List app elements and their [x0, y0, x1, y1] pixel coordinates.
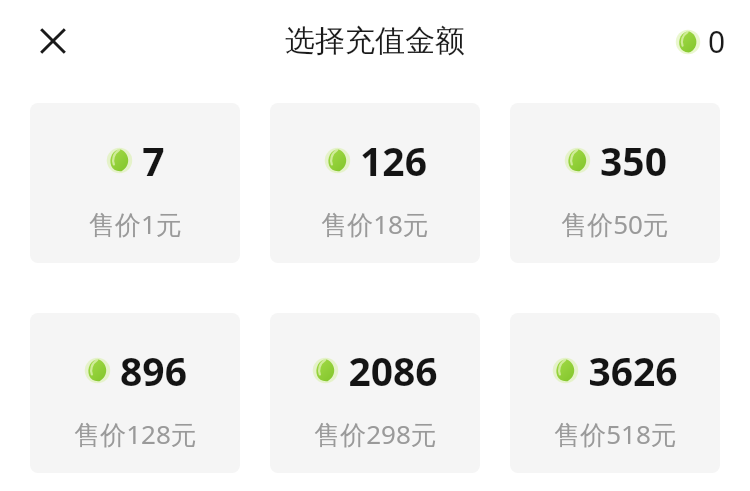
- staticText: 售价128元: [74, 416, 197, 452]
- button[interactable]: 3626: [510, 313, 720, 473]
- button[interactable]: 350: [510, 103, 720, 263]
- staticText: 7: [142, 134, 165, 187]
- staticText: 售价518元: [554, 416, 677, 452]
- staticText: 选择充值金额: [285, 22, 465, 60]
- staticText: 2086: [348, 344, 438, 397]
- staticText: 售价1元: [89, 206, 182, 242]
- button[interactable]: 126: [270, 103, 480, 263]
- staticText: 售价298元: [314, 416, 437, 452]
- staticText: 896: [120, 344, 187, 397]
- button[interactable]: 2086: [270, 313, 480, 473]
- button[interactable]: 0: [675, 21, 726, 62]
- staticText: 0: [708, 21, 726, 62]
- staticText: 售价50元: [561, 206, 669, 242]
- button[interactable]: 896: [30, 313, 240, 473]
- staticText: 售价18元: [321, 206, 429, 242]
- button[interactable]: 7: [30, 103, 240, 263]
- staticText: 126: [360, 134, 427, 187]
- button[interactable]: 关闭: [26, 14, 80, 68]
- staticText: 350: [600, 134, 667, 187]
- staticText: 3626: [588, 344, 678, 397]
